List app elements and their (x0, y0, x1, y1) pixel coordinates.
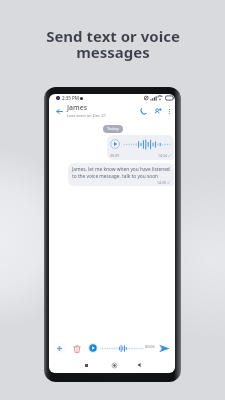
button[interactable]: Delete recording (70, 342, 83, 355)
button[interactable]: Home (109, 360, 119, 370)
button[interactable]: More options (164, 106, 174, 116)
staticText: Today (107, 126, 119, 132)
staticText: Last seen on Dec 21 (67, 113, 107, 119)
staticText: Send text or voice messages (46, 26, 180, 62)
staticText: 00:09 (110, 153, 119, 158)
button[interactable]: Play recording (87, 342, 99, 354)
button[interactable]: Send (158, 342, 171, 355)
button[interactable]: Attach (53, 342, 66, 355)
staticText: James, let me know when you have listene… (72, 166, 170, 180)
staticText: 14:34 (158, 153, 167, 158)
button[interactable]: Call (137, 105, 149, 117)
staticText: 00:06 (145, 344, 155, 349)
staticText: James (67, 103, 88, 113)
staticText: 2:35 PM (62, 95, 79, 101)
button[interactable]: Back (53, 105, 65, 117)
staticText: 14:35 (157, 180, 166, 185)
button[interactable]: Add person (151, 105, 163, 117)
button[interactable]: 00:09 (107, 135, 174, 160)
button[interactable]: James, let me know when you have listene… (68, 163, 174, 186)
button[interactable]: Recents (81, 360, 91, 370)
button[interactable]: Back (134, 360, 144, 370)
